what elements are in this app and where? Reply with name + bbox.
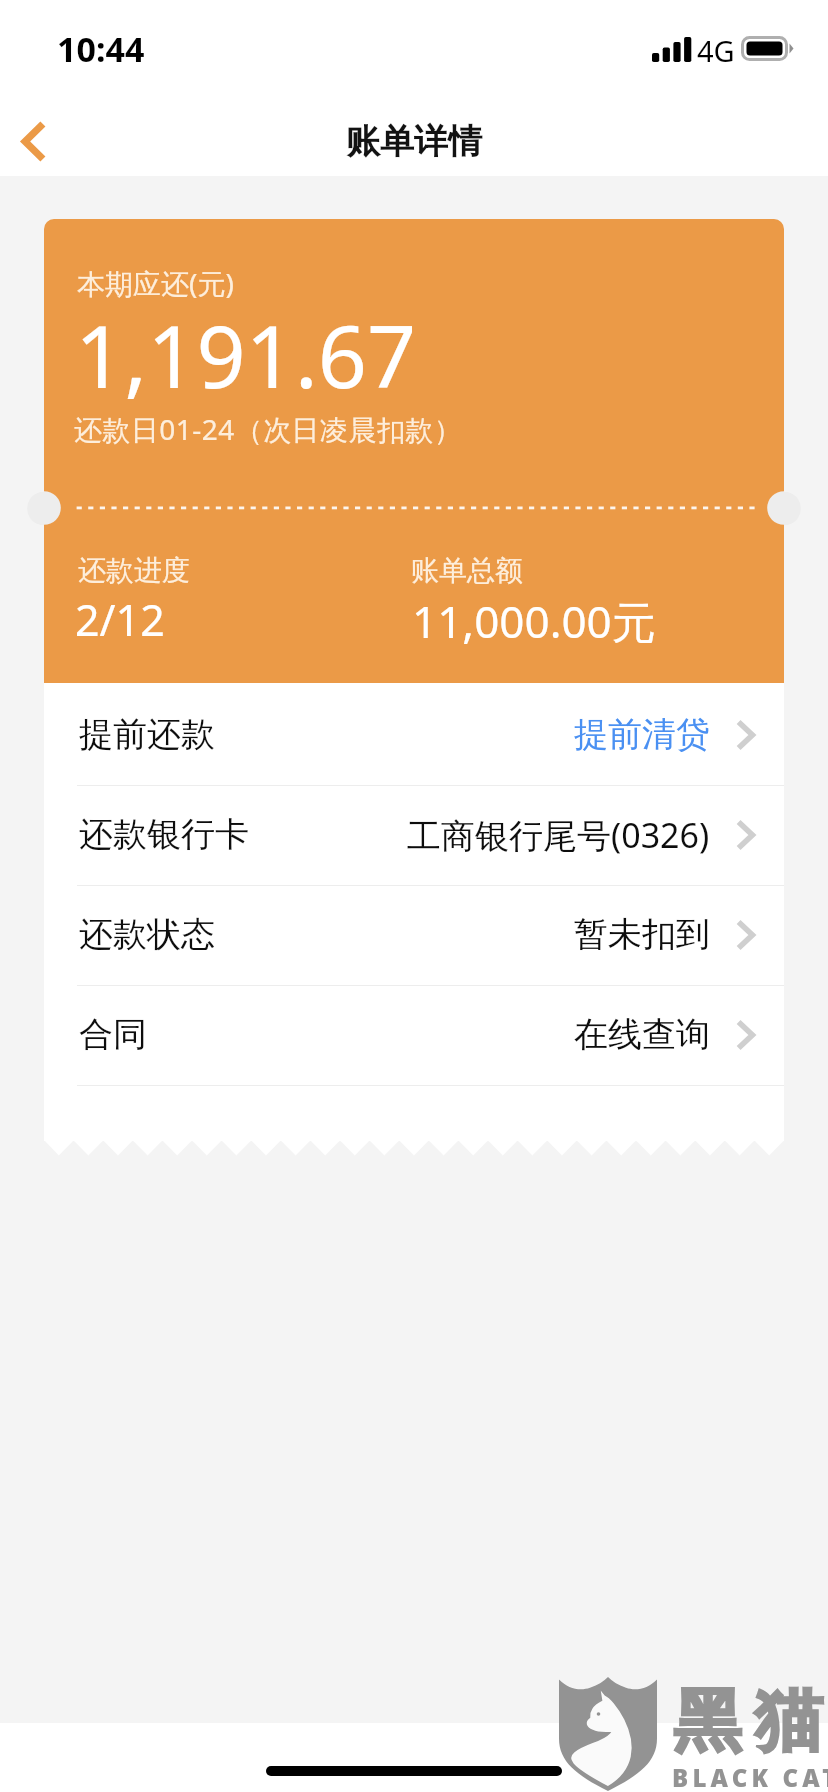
staticText: 提前还款: [79, 713, 215, 756]
staticText: 账单总额: [411, 553, 523, 588]
staticText: 合同: [79, 1013, 147, 1056]
staticText: 账单详情: [346, 120, 482, 163]
staticText: 还款进度: [78, 553, 190, 588]
staticText: 1,191.67: [75, 296, 417, 413]
button[interactable]: 合同: [44, 986, 784, 1085]
staticText: 还款日01-24（次日凌晨扣款）: [74, 410, 463, 448]
staticText: 还款状态: [79, 913, 215, 956]
staticText: 黑猫: [667, 1679, 828, 1765]
button[interactable]: 还款状态: [44, 886, 784, 985]
staticText: 提前清贷: [574, 713, 710, 756]
button[interactable]: 还款银行卡: [44, 786, 784, 885]
staticText: 2/12: [75, 590, 165, 649]
staticText: 10:44: [57, 26, 145, 72]
button[interactable]: Back: [0, 95, 82, 174]
staticText: 还款银行卡: [79, 813, 249, 856]
staticText: 4G: [697, 31, 735, 70]
staticText: 11,000.00元: [412, 591, 656, 651]
staticText: 暂未扣到: [574, 913, 710, 956]
staticText: BLACK CAT: [672, 1761, 828, 1792]
staticText: 本期应还(元): [77, 264, 234, 302]
staticText: 在线查询: [574, 1013, 710, 1056]
staticText: 工商银行尾号(0326): [407, 812, 710, 858]
button[interactable]: 提前还款: [44, 686, 784, 785]
